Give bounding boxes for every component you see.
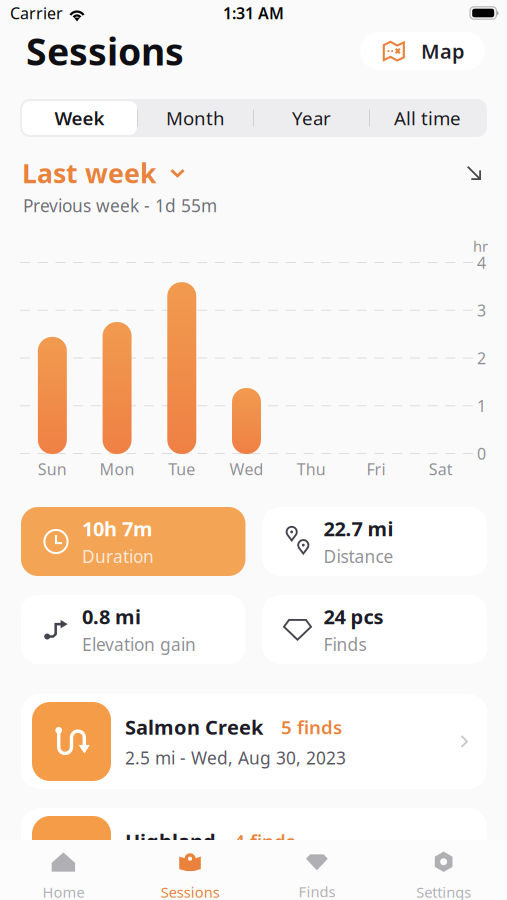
staticText: Previous week - 1d 55m <box>23 194 217 217</box>
staticText: Last week <box>22 155 157 191</box>
staticText: Sat <box>429 458 453 480</box>
button[interactable]: All time <box>370 101 485 135</box>
button[interactable]: 10h 7m <box>21 507 245 576</box>
button[interactable]: Settings <box>380 840 507 900</box>
staticText: Mon <box>100 458 135 480</box>
button[interactable]: Home <box>0 840 127 900</box>
button[interactable]: 0.8 mi <box>21 595 245 664</box>
staticText: 1:31 AM <box>223 2 284 24</box>
staticText: 4 <box>477 252 486 273</box>
button[interactable]: Finds <box>253 840 380 900</box>
staticText: Highland <box>125 828 216 854</box>
button[interactable]: Map <box>360 32 485 70</box>
staticText: Sun <box>38 458 67 480</box>
button[interactable]: Week <box>22 101 137 135</box>
staticText: 4 finds <box>234 829 295 853</box>
button[interactable]: Year <box>254 101 369 135</box>
staticText: hr <box>473 236 488 256</box>
staticText: Home <box>42 882 84 900</box>
staticText: Thu <box>297 458 326 480</box>
staticText: Duration <box>82 545 154 568</box>
button[interactable]: 24 pcs <box>262 595 487 664</box>
staticText: Year <box>292 106 331 130</box>
staticText: Week <box>54 106 104 130</box>
staticText: 0 <box>477 443 486 464</box>
staticText: Elevation gain <box>82 633 196 656</box>
button[interactable]: Sessions <box>127 840 254 900</box>
staticText: Distance <box>323 545 393 568</box>
staticText: Fri <box>366 458 385 480</box>
button[interactable]: Last week <box>22 158 185 188</box>
staticText: Sessions <box>26 26 184 76</box>
staticText: Settings <box>416 882 471 900</box>
staticText: Salmon Creek <box>125 714 263 740</box>
staticText: 24 pcs <box>323 603 383 630</box>
staticText: Tue <box>168 458 195 480</box>
button[interactable]: Highland <box>21 808 487 900</box>
staticText: Finds <box>323 633 366 656</box>
button[interactable]: Expand <box>461 158 487 188</box>
staticText: 5 finds <box>281 715 342 739</box>
staticText: 3 <box>477 300 486 321</box>
staticText: Carrier <box>10 2 63 24</box>
staticText: Month <box>166 106 225 130</box>
button[interactable]: Month <box>138 101 253 135</box>
staticText: 10h 7m <box>82 515 153 542</box>
staticText: Wed <box>229 458 263 480</box>
button[interactable]: Salmon Creek <box>21 694 487 789</box>
staticText: Map <box>421 38 465 64</box>
staticText: 2.5 mi - Wed, Aug 30, 2023 <box>125 746 346 769</box>
staticText: 2 <box>477 347 486 369</box>
staticText: 1 <box>477 395 486 416</box>
staticText: 22.7 mi <box>323 515 393 542</box>
button[interactable]: 22.7 mi <box>262 507 487 576</box>
staticText: Finds <box>298 882 335 900</box>
staticText: All time <box>394 106 461 130</box>
staticText: 0.8 mi <box>82 603 141 630</box>
staticText: Sessions <box>161 882 220 900</box>
staticText: 3.1 mi - Tue, Aug 29, 2023 <box>125 860 339 883</box>
